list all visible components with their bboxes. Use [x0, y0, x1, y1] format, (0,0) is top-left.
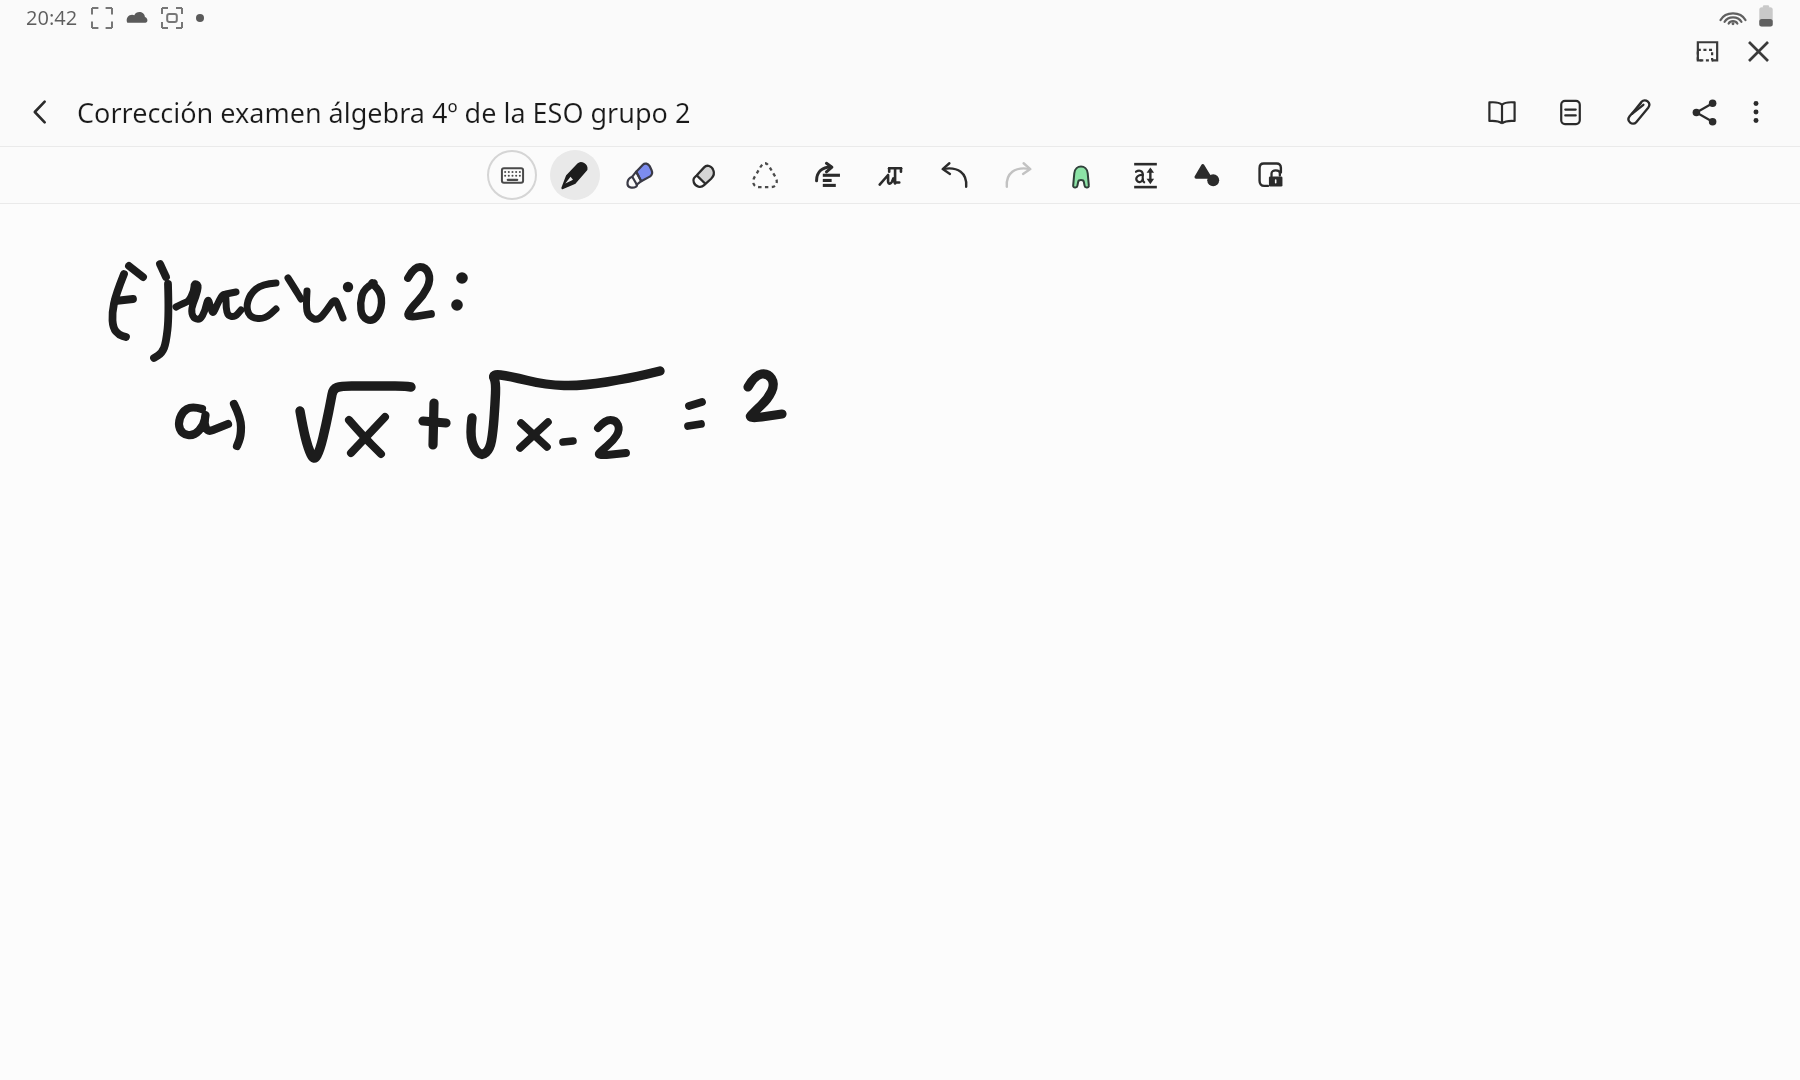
button[interactable]: Highlighter	[614, 150, 664, 200]
button[interactable]: Lock	[1246, 150, 1296, 200]
button[interactable]: Convert to text	[867, 150, 917, 200]
button[interactable]: Text size	[1120, 150, 1170, 200]
button[interactable]: Share	[1680, 88, 1728, 136]
button[interactable]: Corrección examen álgebra 4º de la ESO g…	[70, 86, 698, 138]
staticText: Corrección examen álgebra 4º de la ESO g…	[77, 94, 691, 131]
button[interactable]: Redo	[993, 150, 1043, 200]
button[interactable]: Note list	[1546, 88, 1594, 136]
button[interactable]: Writing assist	[1056, 150, 1106, 200]
staticText: 20:42	[26, 4, 78, 31]
button[interactable]: Keyboard	[487, 150, 537, 200]
button[interactable]: More options	[1732, 88, 1780, 136]
button[interactable]: Shapes	[1183, 150, 1233, 200]
button[interactable]: Undo	[930, 150, 980, 200]
button[interactable]: Select	[740, 150, 790, 200]
button[interactable]: Back	[16, 88, 64, 136]
button[interactable]: Eraser	[677, 150, 727, 200]
button[interactable]: Pen	[550, 150, 600, 200]
button[interactable]: Reading mode	[1478, 88, 1526, 136]
button[interactable]: Attach	[1614, 88, 1662, 136]
button[interactable]: Close	[1736, 29, 1780, 73]
button[interactable]: Align	[803, 150, 853, 200]
button[interactable]: Pop-up view	[1685, 29, 1729, 73]
